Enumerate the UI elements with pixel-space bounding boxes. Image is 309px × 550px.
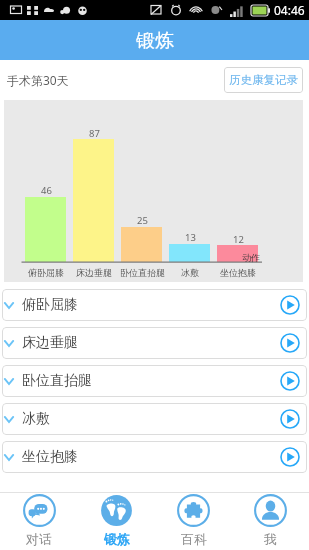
staticText: 冰敷: [22, 410, 50, 428]
button[interactable]: 播放 冰敷: [280, 409, 300, 429]
staticText: 俯卧屈膝: [22, 296, 78, 314]
staticText: 历史康复记录: [229, 73, 298, 87]
staticText: 46: [41, 184, 52, 197]
staticText: 床边垂腿: [76, 267, 112, 278]
staticText: 手术第30天: [7, 72, 69, 88]
button[interactable]: 床边垂腿: [2, 327, 307, 359]
button[interactable]: 坐位抱膝: [2, 441, 307, 473]
staticText: 12: [233, 233, 244, 246]
staticText: 13: [185, 231, 196, 244]
staticText: 卧位直抬腿: [22, 372, 92, 390]
staticText: 卧位直抬腿: [120, 267, 165, 278]
staticText: 对话: [26, 531, 52, 547]
staticText: 百科: [181, 531, 207, 547]
staticText: 床边垂腿: [22, 334, 78, 352]
staticText: 04:46: [274, 2, 305, 18]
button[interactable]: 俯卧屈膝: [2, 289, 307, 321]
button[interactable]: 播放 床边垂腿: [280, 333, 300, 353]
staticText: 25: [137, 214, 148, 227]
button[interactable]: 冰敷: [2, 403, 307, 435]
staticText: 俯卧屈膝: [28, 267, 64, 278]
button[interactable]: 卧位直抬腿: [2, 365, 307, 397]
button[interactable]: 我: [232, 493, 309, 550]
button[interactable]: 播放 俯卧屈膝: [280, 295, 300, 315]
button[interactable]: 对话: [0, 493, 78, 550]
staticText: 锻炼: [104, 531, 130, 547]
button[interactable]: 百科: [155, 493, 232, 550]
staticText: 坐位抱膝: [220, 267, 256, 278]
staticText: 锻炼: [136, 29, 174, 53]
button[interactable]: 锻炼: [78, 493, 155, 550]
button[interactable]: 播放 坐位抱膝: [280, 447, 300, 467]
staticText: 87: [89, 127, 100, 140]
staticText: 冰敷: [181, 267, 199, 278]
staticText: 坐位抱膝: [22, 448, 78, 466]
button[interactable]: 播放 卧位直抬腿: [280, 371, 300, 391]
staticText: 动作: [242, 252, 260, 263]
staticText: 我: [264, 531, 277, 547]
button[interactable]: 历史康复记录: [224, 67, 303, 93]
